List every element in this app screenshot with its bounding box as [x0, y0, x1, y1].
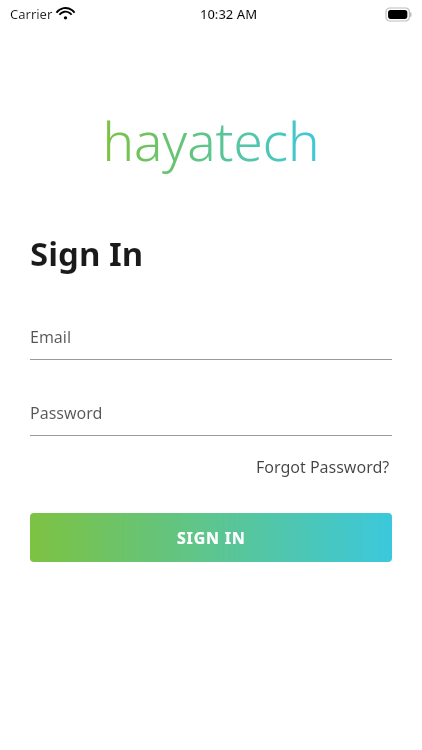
- staticText: 10:32 AM: [200, 5, 258, 23]
- staticText: Password: [30, 402, 103, 424]
- button[interactable]: SIGN IN: [30, 513, 392, 562]
- staticText: Carrier: [10, 5, 53, 23]
- staticText: hayatech: [102, 104, 320, 176]
- staticText: Forgot Password?: [256, 456, 390, 478]
- button[interactable]: Email: [30, 326, 392, 360]
- other: Wi-Fi signal: [58, 8, 73, 20]
- staticText: Email: [30, 326, 72, 348]
- staticText: SIGN IN: [177, 527, 246, 549]
- other: Battery full: [386, 8, 412, 21]
- button[interactable]: Forgot Password?: [254, 452, 392, 482]
- staticText: Sign In: [30, 231, 144, 276]
- button[interactable]: Password: [30, 402, 392, 436]
